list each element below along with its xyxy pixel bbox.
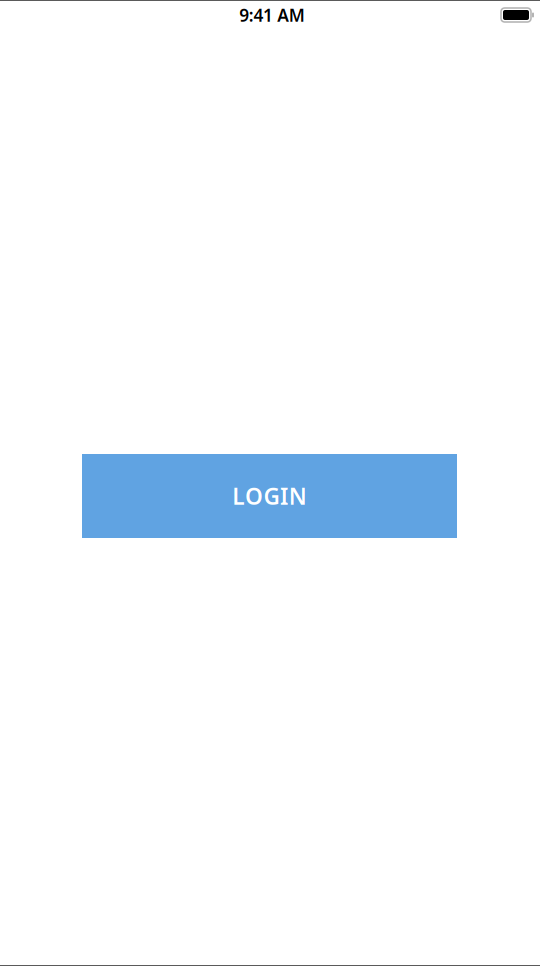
- button[interactable]: LOGIN: [82, 454, 457, 538]
- staticText: 9:41 AM: [239, 3, 305, 26]
- staticText: LOGIN: [232, 481, 307, 511]
